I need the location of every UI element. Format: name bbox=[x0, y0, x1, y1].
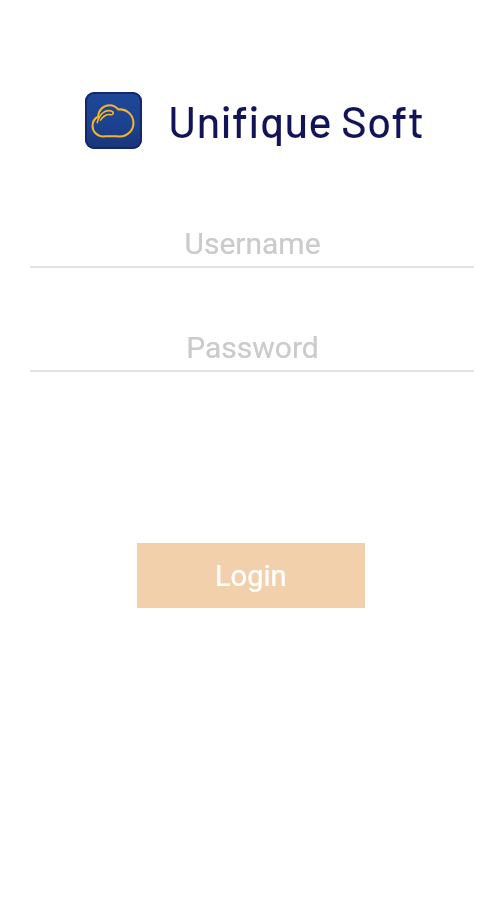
staticText: Username bbox=[184, 226, 321, 261]
staticText: Password bbox=[186, 330, 319, 365]
button[interactable]: Username bbox=[30, 220, 474, 268]
other: Unifique Soft logo bbox=[85, 92, 142, 149]
staticText: Login bbox=[215, 559, 287, 593]
button[interactable]: Password bbox=[30, 324, 474, 372]
staticText: Unifique Soft bbox=[168, 94, 425, 147]
button[interactable]: Login bbox=[137, 543, 365, 608]
